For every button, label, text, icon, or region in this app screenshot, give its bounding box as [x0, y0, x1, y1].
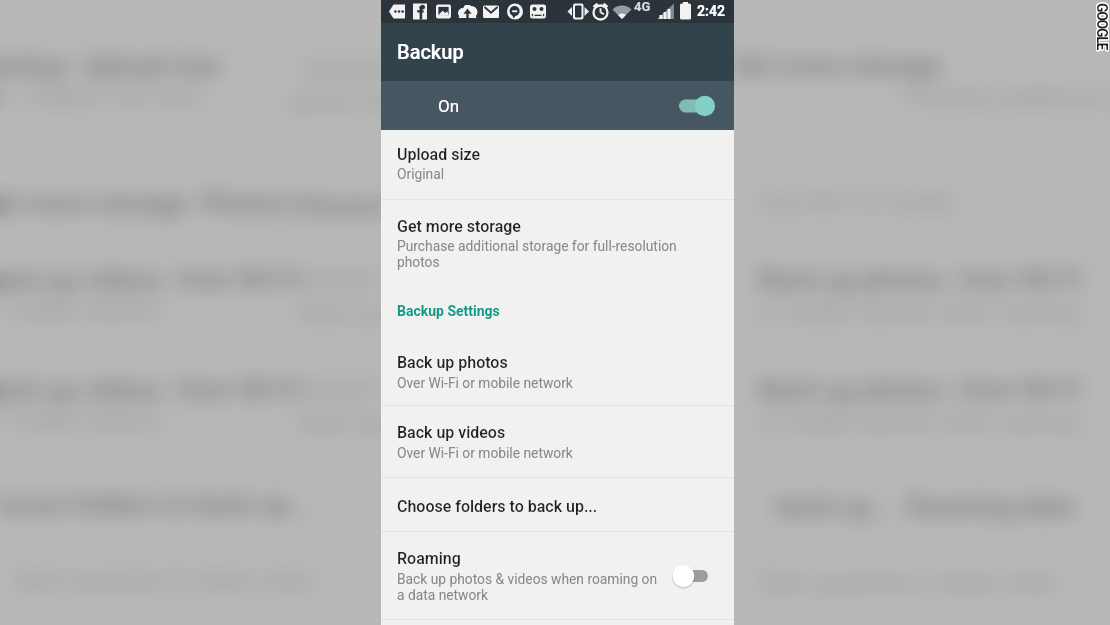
staticText: Back up photos	[300, 410, 452, 436]
button[interactable]: Backup Settings	[381, 285, 734, 335]
staticText: Purchase additional storage for full-res…	[397, 238, 677, 254]
staticText: Back up photos & videos when roaming on	[397, 571, 658, 587]
staticText: On	[438, 96, 460, 116]
staticText: Over Wi-Fi or mobile network	[397, 445, 573, 461]
button[interactable]: Back up photos	[381, 335, 734, 405]
staticText: photos Backup Settings	[290, 90, 528, 116]
staticText: storage for full-resolution	[300, 56, 547, 82]
staticText: Over Wi-Fi or mobile network	[397, 375, 573, 391]
staticText: network Roaming	[300, 376, 477, 402]
staticText: Back up videos	[397, 423, 506, 442]
staticText: GOOGLE	[1094, 4, 1110, 51]
staticText: photos	[397, 254, 440, 270]
staticText: Back up photos	[300, 300, 452, 326]
other: Backup on	[673, 93, 715, 119]
staticText: GOOGLE	[1095, 4, 1110, 51]
staticText: Backup Settings	[397, 303, 500, 319]
staticText: GOOGLE	[1093, 4, 1109, 51]
staticText: GOOGLE	[1093, 3, 1109, 50]
staticText: Choose folders	[290, 190, 474, 222]
staticText: Backup Upload size	[0, 50, 222, 82]
staticText: Upload size	[397, 145, 481, 164]
staticText: Backup	[397, 40, 464, 63]
staticText: GOOGLE	[1093, 2, 1109, 49]
button[interactable]: Choose folders to back up...	[381, 478, 734, 531]
staticText: Back up photos	[397, 353, 508, 372]
staticText: 4G	[634, 0, 651, 14]
staticText: GOOGLE	[1094, 3, 1110, 50]
staticText: Back up photos Over Wi-Fi	[758, 374, 1083, 406]
staticText: Back up photos Over Wi-Fi	[758, 264, 1083, 296]
staticText: back up... Roaming data	[776, 491, 1075, 523]
staticText: GOOGLE	[1095, 3, 1110, 50]
button[interactable]: Roaming	[381, 532, 734, 619]
staticText: 2:42	[697, 3, 726, 19]
staticText: Get more storage	[397, 217, 521, 236]
staticText: network Roaming	[300, 266, 477, 292]
staticText: Original	[397, 166, 445, 182]
button[interactable]: Get more storage	[381, 200, 734, 285]
staticText: Choose folders to back up...	[397, 497, 598, 516]
other: Roaming off	[671, 563, 713, 589]
staticText: GOOGLE	[1094, 2, 1110, 49]
staticText: Choose folders to back up...	[0, 489, 312, 521]
staticText: GOOGLE	[1095, 2, 1110, 49]
staticText: Back up videos Over Wi-Fi	[0, 374, 301, 406]
staticText: Roaming	[397, 549, 461, 568]
staticText: Back up videos Over Wi-Fi	[0, 264, 301, 296]
staticText: Get more storage	[732, 50, 942, 82]
button[interactable]: Upload size	[381, 130, 734, 199]
staticText: a data network	[397, 587, 489, 603]
button[interactable]: On	[381, 81, 734, 130]
button[interactable]: Back up videos	[381, 406, 734, 477]
staticText: Get more storage Photos	[0, 188, 287, 220]
